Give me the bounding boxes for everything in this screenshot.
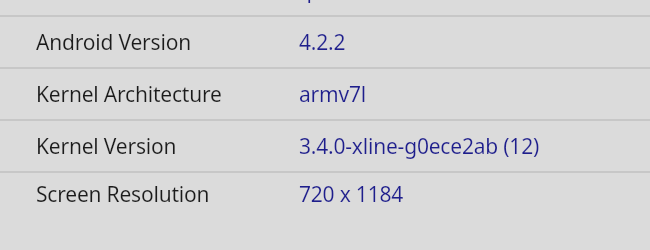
button[interactable]: Kernel Version: [0, 121, 650, 171]
button[interactable]: Hardware: [0, 0, 650, 15]
button[interactable]: Screen Resolution: [0, 173, 650, 215]
staticText: 720 x 1184: [299, 180, 404, 209]
button[interactable]: Android Version: [0, 17, 650, 67]
staticText: armv7l: [299, 80, 366, 109]
staticText: Kernel Architecture: [36, 80, 222, 109]
staticText: Android Version: [36, 28, 191, 57]
staticText: qcom: [299, 0, 354, 5]
staticText: Screen Resolution: [36, 180, 210, 209]
button[interactable]: Kernel Architecture: [0, 69, 650, 119]
staticText: 3.4.0-xline-g0ece2ab (12): [299, 132, 540, 161]
staticText: 4.2.2: [299, 28, 346, 57]
staticText: Kernel Version: [36, 132, 177, 161]
